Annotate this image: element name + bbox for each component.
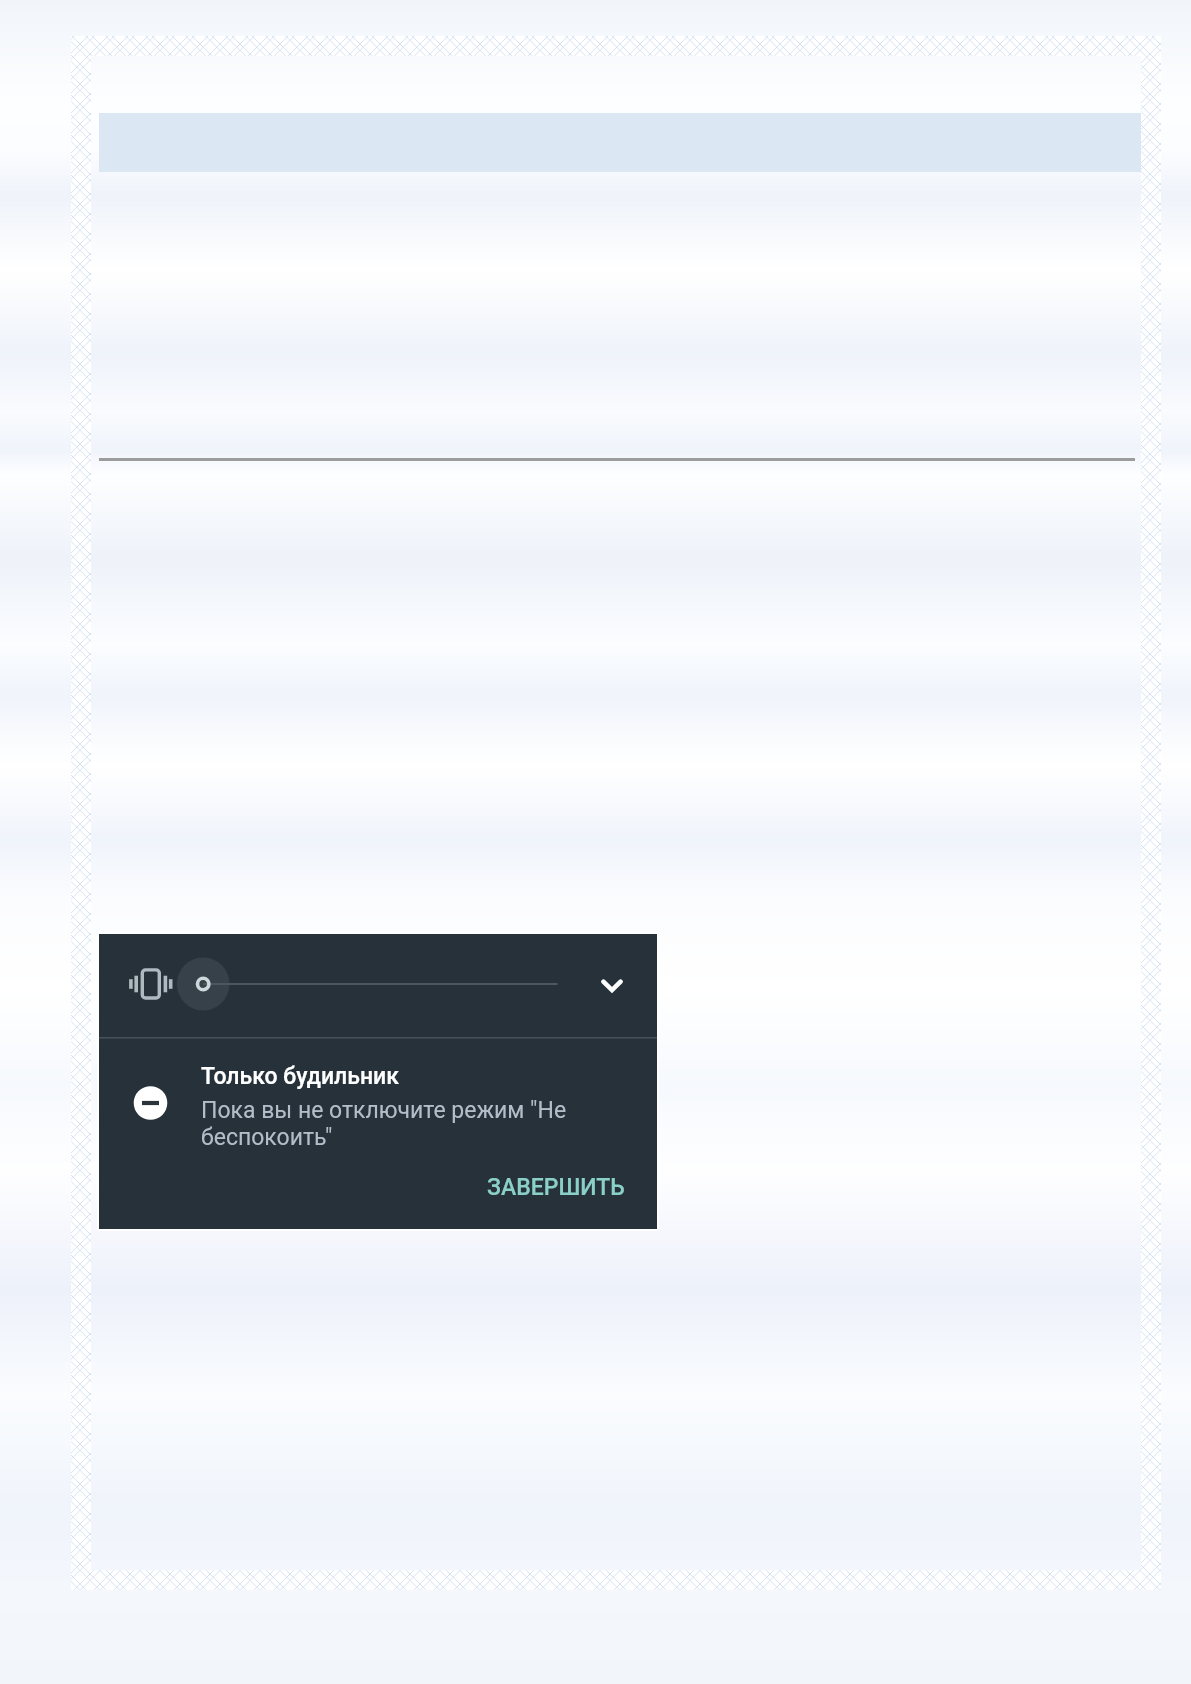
button[interactable]: Ringer mode: vibrate	[121, 954, 181, 1014]
button[interactable]: Volume slider	[177, 958, 570, 1010]
button[interactable]: Только будильник	[99, 1039, 657, 1229]
button[interactable]: ЗАВЕРШИТЬ	[478, 1167, 634, 1207]
button[interactable]: Expand volume panel	[582, 957, 642, 1017]
staticText: ЗАВЕРШИТЬ	[487, 1174, 625, 1201]
staticText: Пока вы не отключите режим "Не беспокоит…	[201, 1097, 601, 1150]
staticText: Только будильник	[201, 1063, 399, 1090]
